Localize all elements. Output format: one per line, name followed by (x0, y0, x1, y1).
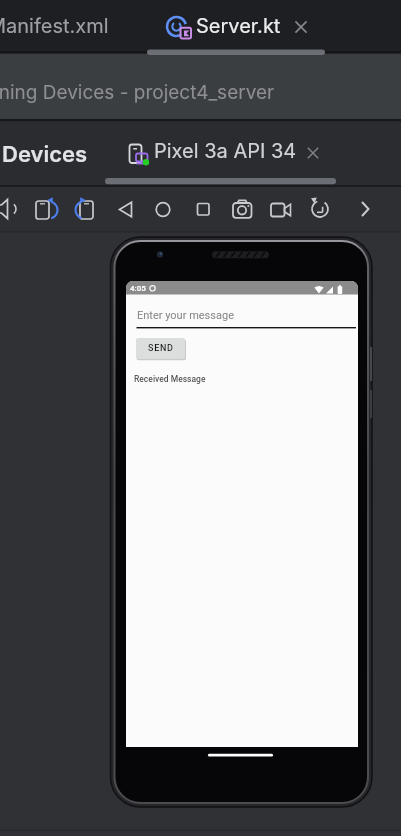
button[interactable] (0, 195, 20, 223)
staticText: Pixel 3a API 34 (154, 139, 297, 163)
button[interactable] (266, 195, 294, 223)
button[interactable] (105, 121, 336, 185)
staticText: SEND (148, 343, 174, 354)
button[interactable] (72, 195, 100, 223)
staticText: Devices (2, 141, 88, 168)
staticText: Server.kt (196, 14, 281, 38)
staticText: Manifest.xml (0, 14, 109, 38)
button[interactable]: SEND (136, 338, 185, 359)
button[interactable] (137, 305, 356, 330)
button[interactable] (149, 195, 177, 223)
button[interactable] (228, 195, 256, 223)
staticText: Enter your message (137, 309, 234, 322)
button[interactable] (0, 0, 147, 53)
button[interactable] (29, 195, 57, 223)
staticText: Running Devices - project4_server (0, 81, 275, 104)
button[interactable] (306, 195, 334, 223)
staticText: 4:05 (130, 284, 146, 293)
button[interactable] (189, 195, 217, 223)
button[interactable] (351, 195, 379, 223)
staticText: Received Message (134, 374, 206, 384)
button[interactable] (111, 195, 139, 223)
button[interactable] (147, 0, 325, 53)
